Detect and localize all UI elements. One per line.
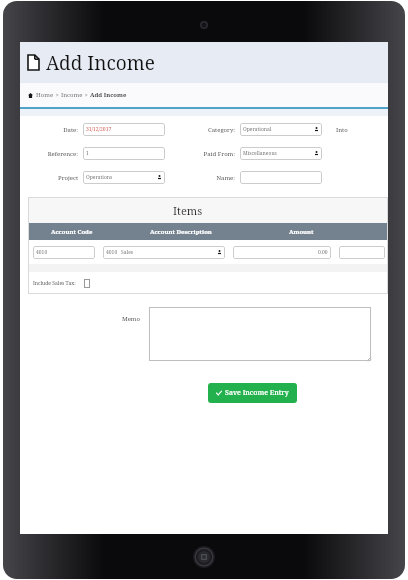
button[interactable]: Save Income Entry [208, 383, 297, 403]
button[interactable]: Income [61, 91, 83, 99]
button[interactable]: Paid From [240, 147, 322, 160]
button[interactable]: Date [83, 123, 165, 136]
staticText: Save Income Entry [225, 388, 289, 398]
staticText: > [54, 91, 61, 99]
staticText: Category: [191, 126, 235, 134]
staticText: Paid From: [191, 150, 235, 158]
staticText: Items [173, 203, 203, 218]
staticText: 4010 [36, 249, 48, 256]
staticText: Operations [86, 174, 113, 181]
button[interactable]: Memo [149, 307, 371, 361]
staticText: Operational [243, 126, 272, 133]
staticText: Date: [20, 126, 78, 134]
button[interactable]: Home [36, 91, 54, 99]
button[interactable]: Account code [33, 246, 95, 259]
staticText: Add Income [90, 91, 127, 99]
staticText: Project [20, 174, 78, 182]
staticText: Reference: [20, 150, 78, 158]
button[interactable]: Home [193, 546, 215, 568]
staticText: Account Description [150, 228, 212, 236]
staticText: Miscellaneous [243, 150, 277, 157]
staticText: 1 [86, 150, 89, 157]
button[interactable]: Category [240, 123, 322, 136]
staticText: 0.00 [318, 249, 328, 256]
button[interactable]: Account description [103, 246, 225, 259]
button[interactable]: Amount [233, 246, 331, 259]
staticText: 31/12/2017 [86, 126, 112, 133]
staticText: Include Sales Tax: [33, 280, 76, 287]
button[interactable]: Reference [83, 147, 165, 160]
staticText: Into [336, 126, 348, 134]
staticText: Amount [289, 228, 314, 236]
button[interactable]: Include Sales Tax [84, 279, 90, 288]
staticText: 4010 Sales [106, 249, 134, 256]
button[interactable]: Name [240, 171, 322, 184]
staticText: Account Code [51, 228, 93, 236]
button[interactable]: Project [83, 171, 165, 184]
staticText: Add Income [46, 50, 155, 76]
staticText: > [83, 91, 90, 99]
staticText: Name: [191, 174, 235, 182]
button[interactable]: Extra [339, 246, 385, 259]
staticText: Memo [20, 315, 140, 323]
